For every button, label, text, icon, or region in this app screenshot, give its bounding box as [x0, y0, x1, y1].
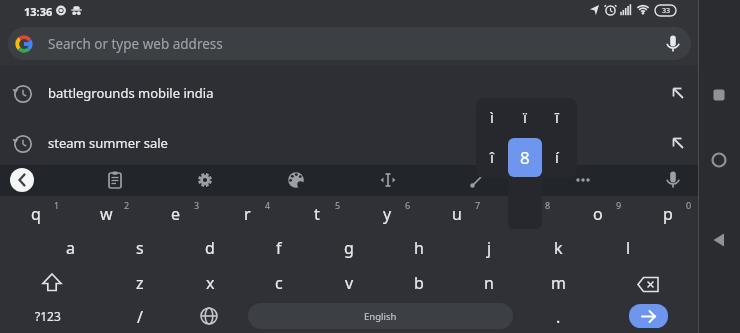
staticText: p	[663, 203, 673, 225]
button[interactable]	[629, 304, 668, 328]
button[interactable]	[659, 30, 687, 58]
staticText: e	[171, 203, 181, 225]
button[interactable]: u	[429, 197, 485, 230]
button[interactable]: n	[461, 266, 517, 299]
staticText: y	[383, 203, 392, 225]
staticText: v	[345, 272, 354, 294]
staticText: w	[100, 203, 113, 225]
button[interactable]: y	[359, 197, 415, 230]
staticText: 3	[194, 199, 200, 211]
staticText: 4	[265, 199, 271, 211]
staticText: 6	[405, 199, 411, 211]
staticText: .	[556, 306, 561, 328]
button[interactable]: h	[391, 231, 447, 264]
staticText: 13:36	[24, 4, 53, 19]
staticText: î	[490, 147, 494, 167]
staticText: /	[137, 306, 143, 328]
button[interactable]: r	[219, 197, 275, 230]
button[interactable]: c	[251, 266, 307, 299]
button[interactable]	[102, 167, 128, 193]
staticText: r	[244, 203, 251, 225]
staticText: 2	[124, 199, 130, 211]
staticText: s	[136, 237, 144, 259]
button[interactable]	[707, 148, 731, 172]
button[interactable]: 8	[508, 138, 542, 177]
button[interactable]: o	[570, 197, 626, 230]
button[interactable]: k	[530, 231, 586, 264]
button[interactable]	[659, 166, 687, 194]
staticText: 33	[662, 6, 671, 16]
button[interactable]	[195, 302, 223, 330]
button[interactable]: t	[289, 197, 345, 230]
staticText: ?123	[35, 308, 61, 324]
staticText: a	[66, 237, 75, 259]
button[interactable]	[8, 27, 691, 60]
staticText: n	[484, 272, 494, 294]
button[interactable]: ?123	[0, 300, 108, 332]
staticText: battlegrounds mobile india	[48, 84, 214, 102]
button[interactable]: l	[600, 231, 656, 264]
button[interactable]	[24, 266, 80, 299]
staticText: 5	[335, 199, 341, 211]
button[interactable]	[0, 116, 699, 166]
button[interactable]: a	[42, 231, 98, 264]
button[interactable]: v	[321, 266, 377, 299]
staticText: l	[626, 237, 631, 259]
button[interactable]: x	[182, 266, 238, 299]
staticText: k	[554, 237, 563, 259]
button[interactable]	[283, 167, 309, 193]
staticText: 0	[686, 199, 692, 211]
button[interactable]	[666, 131, 690, 155]
button[interactable]: English	[248, 303, 513, 329]
staticText: 1	[54, 199, 60, 211]
button[interactable]	[192, 167, 218, 193]
staticText: 7	[475, 199, 481, 211]
staticText: c	[275, 272, 283, 294]
staticText: steam summer sale	[48, 134, 168, 152]
button[interactable]: j	[461, 231, 517, 264]
staticText: j	[487, 237, 492, 259]
staticText: 8	[520, 146, 530, 169]
staticText: ī	[555, 107, 559, 127]
staticText: ï	[523, 107, 527, 127]
staticText: d	[205, 237, 215, 259]
button[interactable]	[666, 81, 690, 105]
staticText: q	[31, 203, 41, 225]
button[interactable]	[0, 66, 699, 116]
button[interactable]: z	[112, 266, 168, 299]
staticText: z	[136, 272, 144, 294]
staticText: u	[452, 203, 462, 225]
button[interactable]	[10, 168, 34, 192]
button[interactable]: /	[112, 300, 168, 333]
button[interactable]: s	[112, 231, 168, 264]
staticText: h	[414, 237, 424, 259]
button[interactable]: w	[78, 197, 134, 230]
button[interactable]: f	[251, 231, 307, 264]
staticText: t	[314, 203, 320, 225]
button[interactable]	[375, 167, 401, 193]
staticText: 9	[616, 199, 622, 211]
staticText: í	[555, 147, 559, 167]
button[interactable]	[707, 83, 731, 107]
staticText: f	[276, 237, 282, 259]
button[interactable]: q	[8, 197, 64, 230]
button[interactable]: g	[321, 231, 377, 264]
staticText: 8	[545, 199, 551, 211]
button[interactable]	[620, 268, 676, 301]
staticText: b	[414, 272, 424, 294]
button[interactable]: .	[530, 300, 586, 333]
button[interactable]: e	[148, 197, 204, 230]
staticText: Search or type web address	[48, 35, 223, 53]
button[interactable]	[464, 168, 490, 194]
button[interactable]: d	[182, 231, 238, 264]
button[interactable]	[707, 228, 731, 252]
button[interactable]	[570, 167, 596, 193]
button[interactable]: p	[640, 197, 696, 230]
staticText: m	[551, 272, 566, 294]
button[interactable]: b	[391, 266, 447, 299]
staticText: English	[364, 310, 397, 323]
button[interactable]: m	[530, 266, 586, 299]
staticText: g	[344, 237, 354, 259]
staticText: x	[206, 272, 215, 294]
staticText: o	[593, 203, 603, 225]
